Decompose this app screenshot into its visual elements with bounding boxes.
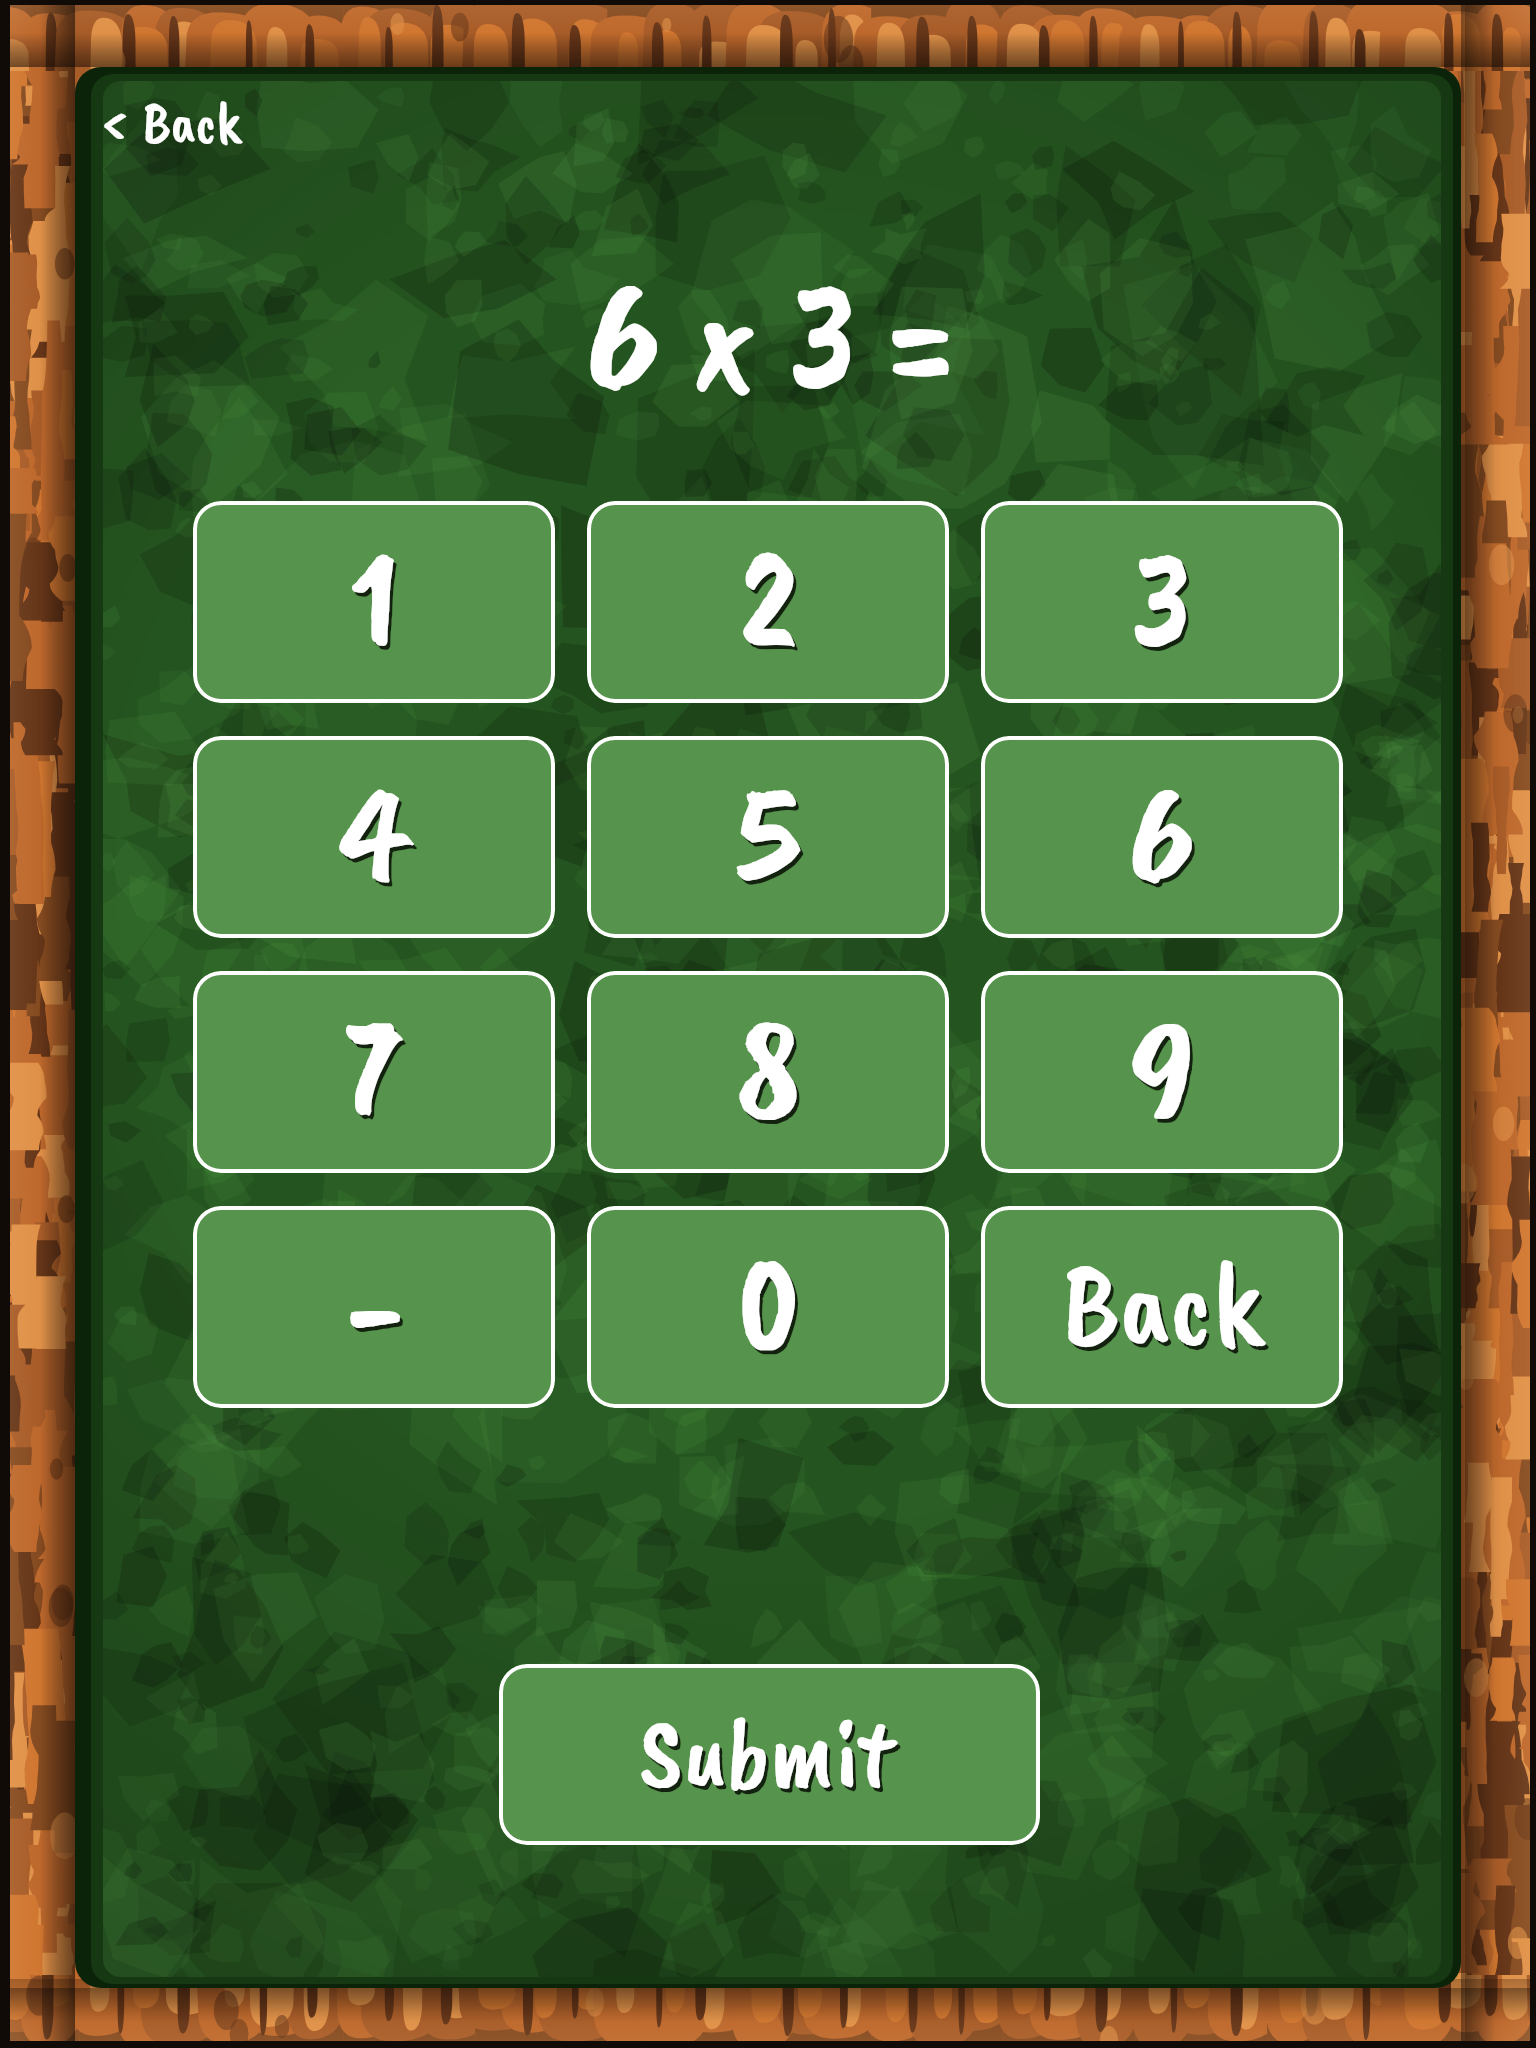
staticText: 0 bbox=[737, 1216, 800, 1392]
staticText: Back bbox=[1062, 1230, 1262, 1379]
staticText: 5 bbox=[737, 746, 799, 922]
staticText: - bbox=[346, 1216, 403, 1392]
button[interactable]: 3 bbox=[981, 501, 1343, 703]
button[interactable]: 7 bbox=[193, 971, 555, 1173]
staticText: 8 bbox=[739, 985, 803, 1161]
staticText: Submit bbox=[642, 1693, 896, 1819]
staticText: - bbox=[349, 1220, 406, 1396]
button[interactable]: Back bbox=[981, 1206, 1343, 1408]
staticText: Submit bbox=[639, 1689, 893, 1815]
staticText: 8 bbox=[736, 981, 800, 1157]
button[interactable]: 9 bbox=[981, 971, 1343, 1173]
staticText: 3 bbox=[1132, 511, 1192, 687]
staticText: 0 bbox=[740, 1220, 803, 1396]
staticText: 2 bbox=[742, 515, 801, 691]
staticText: 9 bbox=[1133, 985, 1198, 1161]
button[interactable]: Submit bbox=[499, 1664, 1040, 1845]
staticText: 7 bbox=[349, 985, 405, 1161]
staticText: 6 bbox=[1132, 750, 1198, 926]
staticText: 4 bbox=[345, 750, 410, 926]
staticText: 6 x 3 = bbox=[586, 236, 951, 434]
staticText: 9 bbox=[1130, 981, 1195, 1157]
button[interactable]: 4 bbox=[193, 736, 555, 938]
staticText: 5 bbox=[740, 750, 802, 926]
staticText: 4 bbox=[342, 746, 407, 922]
button[interactable]: 8 bbox=[587, 971, 949, 1173]
button[interactable]: 0 bbox=[587, 1206, 949, 1408]
staticText: 1 bbox=[350, 511, 399, 687]
button[interactable]: Back bbox=[86, 76, 255, 169]
staticText: 1 bbox=[353, 515, 402, 691]
staticText: 7 bbox=[346, 981, 402, 1157]
staticText: Back bbox=[1065, 1234, 1265, 1383]
button[interactable]: - bbox=[193, 1206, 555, 1408]
button[interactable]: 1 bbox=[193, 501, 555, 703]
button[interactable]: 6 bbox=[981, 736, 1343, 938]
staticText: 6 bbox=[1129, 746, 1195, 922]
button[interactable]: 2 bbox=[587, 501, 949, 703]
staticText: < Back bbox=[100, 86, 241, 159]
staticText: 2 bbox=[739, 511, 798, 687]
button[interactable]: 5 bbox=[587, 736, 949, 938]
staticText: 3 bbox=[1135, 515, 1195, 691]
